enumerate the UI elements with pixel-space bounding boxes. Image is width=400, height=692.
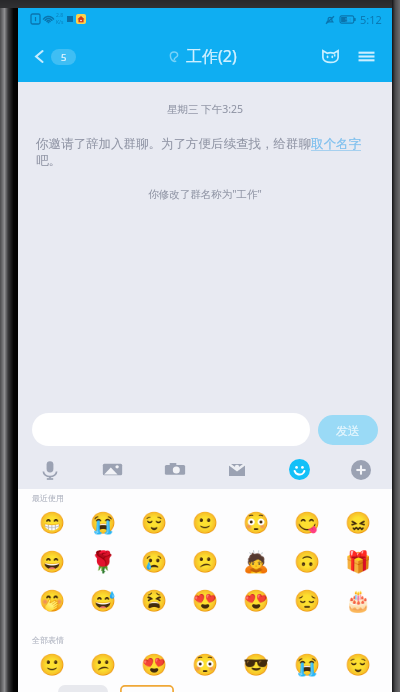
staticText: K/s bbox=[56, 19, 64, 26]
button[interactable]: 😔 bbox=[282, 582, 333, 621]
staticText: 全部表情 bbox=[32, 635, 64, 645]
button[interactable]: More bbox=[330, 450, 392, 489]
staticText: 🎂 bbox=[345, 589, 372, 614]
button[interactable]: 😍 bbox=[180, 582, 231, 621]
staticText: 2.8 bbox=[56, 12, 64, 19]
staticText: 😔 bbox=[294, 589, 321, 614]
button[interactable]: 🙇 bbox=[231, 543, 282, 582]
button[interactable]: 😳 bbox=[180, 646, 231, 685]
button[interactable]: 😭 bbox=[78, 504, 129, 543]
staticText: 😅 bbox=[90, 589, 117, 614]
button[interactable]: 🙂 bbox=[26, 646, 78, 685]
button[interactable]: 🙂 bbox=[180, 504, 231, 543]
button[interactable]: 😋 bbox=[282, 504, 333, 543]
button[interactable]: 🎂 bbox=[333, 582, 384, 621]
staticText: 你邀请了辞加入群聊。为了方便后续查找，给群聊取个名字吧。 bbox=[36, 136, 376, 168]
staticText: 5:12 bbox=[360, 12, 382, 27]
button[interactable]: 😖 bbox=[333, 504, 384, 543]
button[interactable]: 😭 bbox=[282, 646, 333, 685]
staticText: 😫 bbox=[141, 589, 168, 614]
button[interactable]: 🌹 bbox=[78, 543, 129, 582]
staticText: 😳 bbox=[192, 653, 219, 678]
button[interactable]: 🤭 bbox=[26, 582, 78, 621]
staticText: 🙇 bbox=[243, 550, 270, 575]
staticText: 😭 bbox=[90, 511, 117, 536]
staticText: 😕 bbox=[192, 550, 219, 575]
button[interactable]: 🙃 bbox=[282, 543, 333, 582]
staticText: 🙃 bbox=[294, 550, 321, 575]
staticText: 😌 bbox=[141, 511, 168, 536]
button[interactable]: 😍 bbox=[231, 582, 282, 621]
button[interactable]: Pet assistant bbox=[316, 42, 344, 70]
staticText: 😌 bbox=[345, 653, 372, 678]
staticText: 5 bbox=[61, 51, 67, 64]
button[interactable]: 😕 bbox=[180, 543, 231, 582]
button[interactable]: 😢 bbox=[129, 543, 180, 582]
staticText: 😍 bbox=[192, 589, 219, 614]
staticText: 🙂 bbox=[192, 511, 219, 536]
button[interactable]: 😫 bbox=[129, 582, 180, 621]
staticText: 😎 bbox=[243, 653, 270, 678]
staticText: 🤭 bbox=[39, 589, 66, 614]
staticText: 😕 bbox=[90, 653, 117, 678]
staticText: 😍 bbox=[243, 589, 270, 614]
button[interactable]: 😌 bbox=[129, 504, 180, 543]
button[interactable]: Selected sticker tab bbox=[120, 685, 174, 692]
staticText: 最近使用 bbox=[32, 493, 64, 503]
staticText: 😄 bbox=[39, 550, 66, 575]
button[interactable]: 😄 bbox=[26, 543, 78, 582]
button[interactable]: Sticker tab bbox=[58, 685, 108, 692]
button[interactable]: Voice message bbox=[18, 450, 81, 489]
staticText: 工作(2) bbox=[186, 45, 237, 67]
button[interactable]: Camera bbox=[144, 450, 206, 489]
staticText: 🌹 bbox=[90, 550, 117, 575]
staticText: 😢 bbox=[141, 550, 168, 575]
button[interactable]: 😍 bbox=[129, 646, 180, 685]
button[interactable]: Back, 5 unread bbox=[26, 42, 81, 71]
button[interactable]: 🎁 bbox=[333, 543, 384, 582]
button[interactable]: 发送 bbox=[318, 415, 378, 445]
button[interactable]: 😕 bbox=[78, 646, 129, 685]
button[interactable]: 😌 bbox=[333, 646, 384, 685]
staticText: 😋 bbox=[294, 511, 321, 536]
button[interactable]: 😅 bbox=[78, 582, 129, 621]
button[interactable]: 😎 bbox=[231, 646, 282, 685]
staticText: 😁 bbox=[39, 511, 66, 536]
staticText: 🎁 bbox=[345, 550, 372, 575]
button[interactable]: Message input bbox=[32, 413, 310, 446]
staticText: 😖 bbox=[345, 511, 372, 536]
staticText: 发送 bbox=[336, 423, 360, 438]
button[interactable]: 😳 bbox=[231, 504, 282, 543]
staticText: 🙂 bbox=[39, 653, 66, 678]
button[interactable]: Menu bbox=[352, 42, 380, 70]
button[interactable]: Emoji bbox=[268, 450, 330, 489]
staticText: 星期三 下午3:25 bbox=[18, 102, 392, 116]
staticText: 😳 bbox=[243, 511, 270, 536]
staticText: 你修改了群名称为"工作" bbox=[18, 187, 392, 201]
staticText: 53 bbox=[345, 16, 352, 23]
staticText: 😍 bbox=[141, 653, 168, 678]
staticText: 😭 bbox=[294, 653, 321, 678]
button[interactable]: Sticker bbox=[206, 450, 268, 489]
button[interactable]: Photo bbox=[81, 450, 144, 489]
button[interactable]: 😁 bbox=[26, 504, 78, 543]
